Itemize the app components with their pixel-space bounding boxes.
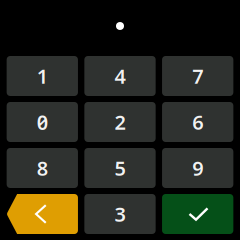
button[interactable]: 8 <box>7 148 78 188</box>
button[interactable]: 7 <box>162 56 233 96</box>
staticText: 9 <box>192 155 203 181</box>
button[interactable]: 0 <box>7 102 78 142</box>
staticText: 4 <box>114 63 125 89</box>
button[interactable]: 2 <box>84 102 156 142</box>
button[interactable]: 3 <box>84 194 156 234</box>
staticText: 3 <box>114 201 125 227</box>
button[interactable]: 9 <box>162 148 233 188</box>
button[interactable]: 1 <box>7 56 78 96</box>
staticText: 7 <box>192 63 203 89</box>
staticText: 8 <box>37 155 48 181</box>
staticText: 0 <box>37 109 48 135</box>
button[interactable]: Confirm <box>162 194 233 234</box>
staticText: 6 <box>192 109 203 135</box>
button[interactable]: 4 <box>84 56 156 96</box>
staticText: 2 <box>114 109 125 135</box>
button[interactable]: 6 <box>162 102 233 142</box>
button[interactable]: Delete <box>7 194 78 234</box>
button[interactable]: 5 <box>84 148 156 188</box>
staticText: 1 <box>37 63 48 89</box>
staticText: 5 <box>114 155 125 181</box>
